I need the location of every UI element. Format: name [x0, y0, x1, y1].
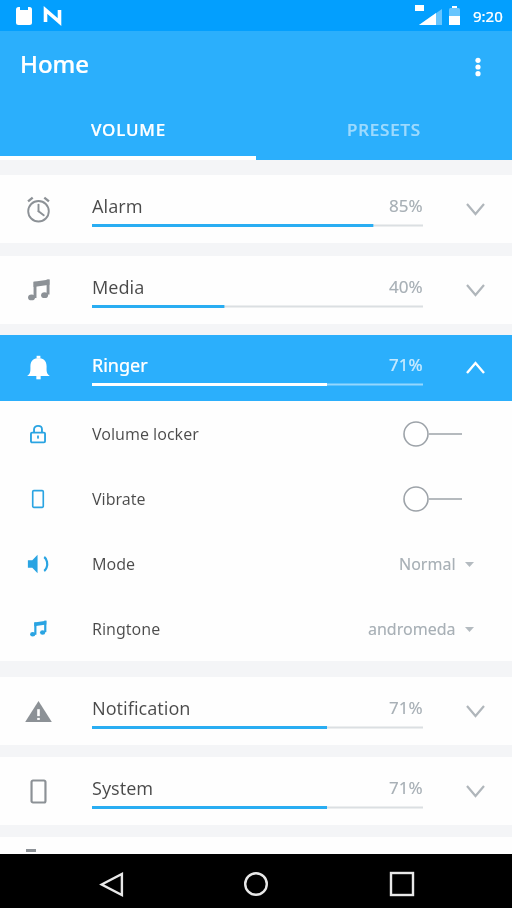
staticText: Mode [92, 553, 136, 575]
button[interactable]: Media [0, 256, 512, 324]
button[interactable]: System [0, 757, 512, 825]
staticText: Notification [92, 696, 191, 721]
button[interactable]: VOLUME [0, 103, 256, 160]
staticText: Media [92, 275, 145, 300]
button[interactable]: Back [76, 860, 148, 908]
staticText: 85% [389, 194, 423, 217]
button[interactable]: Expand System [455, 771, 495, 811]
staticText: Volume locker [92, 423, 199, 445]
staticText: andromeda [368, 618, 456, 640]
staticText: 71% [389, 776, 423, 799]
staticText: VOLUME [91, 118, 166, 141]
staticText: Normal [399, 553, 456, 575]
button[interactable]: Mode [0, 531, 512, 596]
staticText: 9:20 [473, 6, 503, 26]
button[interactable]: Alarm [0, 175, 512, 243]
button[interactable]: More options [456, 45, 500, 89]
staticText: Home [20, 47, 90, 80]
staticText: Ringer [92, 353, 148, 378]
button[interactable]: andromeda [368, 618, 474, 640]
button[interactable]: PRESETS [256, 103, 512, 160]
staticText: 71% [389, 353, 423, 376]
staticText: Vibrate [92, 488, 146, 510]
staticText: System [92, 776, 154, 801]
button[interactable]: Ringtone [0, 596, 512, 661]
button[interactable]: Expand Notification [455, 691, 495, 731]
button[interactable]: Collapse Ringer [455, 348, 495, 388]
button[interactable]: Expand Media [455, 270, 495, 310]
button[interactable]: Notification [0, 677, 512, 745]
button[interactable]: Expand Alarm [455, 189, 495, 229]
button[interactable]: Vibrate [0, 466, 512, 531]
button[interactable]: Volume locker [0, 401, 512, 466]
button[interactable]: Ringer [0, 335, 512, 401]
button[interactable]: Normal [399, 553, 474, 575]
button[interactable]: Toggle Volume locker [403, 417, 462, 451]
button[interactable]: Toggle Vibrate [403, 482, 462, 516]
staticText: 40% [389, 275, 423, 298]
staticText: Alarm [92, 194, 143, 219]
button[interactable]: Home [220, 860, 292, 908]
staticText: Ringtone [92, 618, 161, 640]
button[interactable]: Recents [366, 860, 438, 908]
staticText: 71% [389, 696, 423, 719]
staticText: PRESETS [347, 118, 421, 141]
